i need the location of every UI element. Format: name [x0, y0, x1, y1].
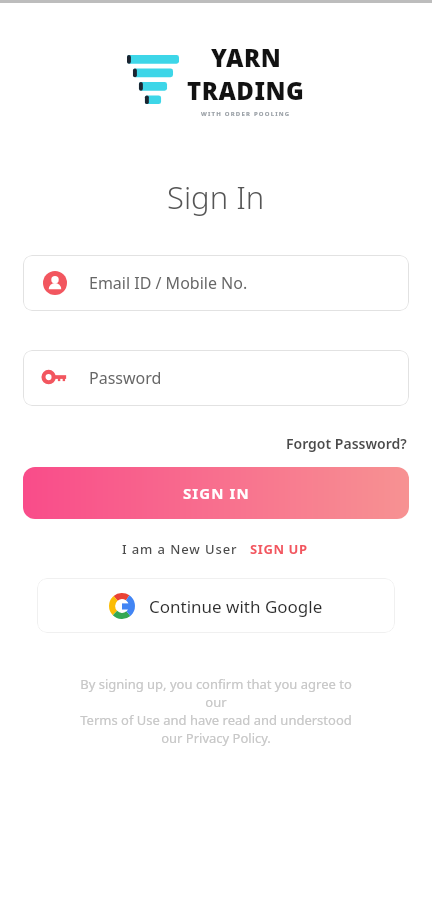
staticText: Email ID / Mobile No.	[89, 272, 248, 294]
staticText: WITH ORDER POOLING	[201, 110, 291, 118]
button[interactable]: Email ID / Mobile No.	[23, 255, 409, 311]
staticText: Password	[89, 367, 162, 389]
staticText: Continue with Google	[149, 595, 323, 618]
button[interactable]: SIGN UP	[248, 538, 310, 560]
staticText: TRADING	[187, 74, 305, 107]
button[interactable]: Continue with Google	[37, 578, 395, 633]
staticText: Forgot Password?	[286, 434, 407, 453]
staticText: Sign In	[167, 176, 265, 218]
staticText: I am a New User	[122, 540, 238, 558]
staticText: SIGN UP	[250, 540, 308, 558]
staticText: By signing up, you confirm that you agre…	[80, 675, 352, 693]
staticText: SIGN IN	[183, 483, 250, 503]
staticText: our Privacy Policy.	[161, 729, 271, 747]
staticText: YARN	[211, 41, 282, 74]
button[interactable]: Forgot Password?	[284, 432, 409, 455]
staticText: Terms of Use and have read and understoo…	[80, 711, 352, 729]
staticText: our	[205, 693, 227, 711]
button[interactable]: SIGN IN	[23, 467, 409, 519]
button[interactable]: Password	[23, 350, 409, 406]
